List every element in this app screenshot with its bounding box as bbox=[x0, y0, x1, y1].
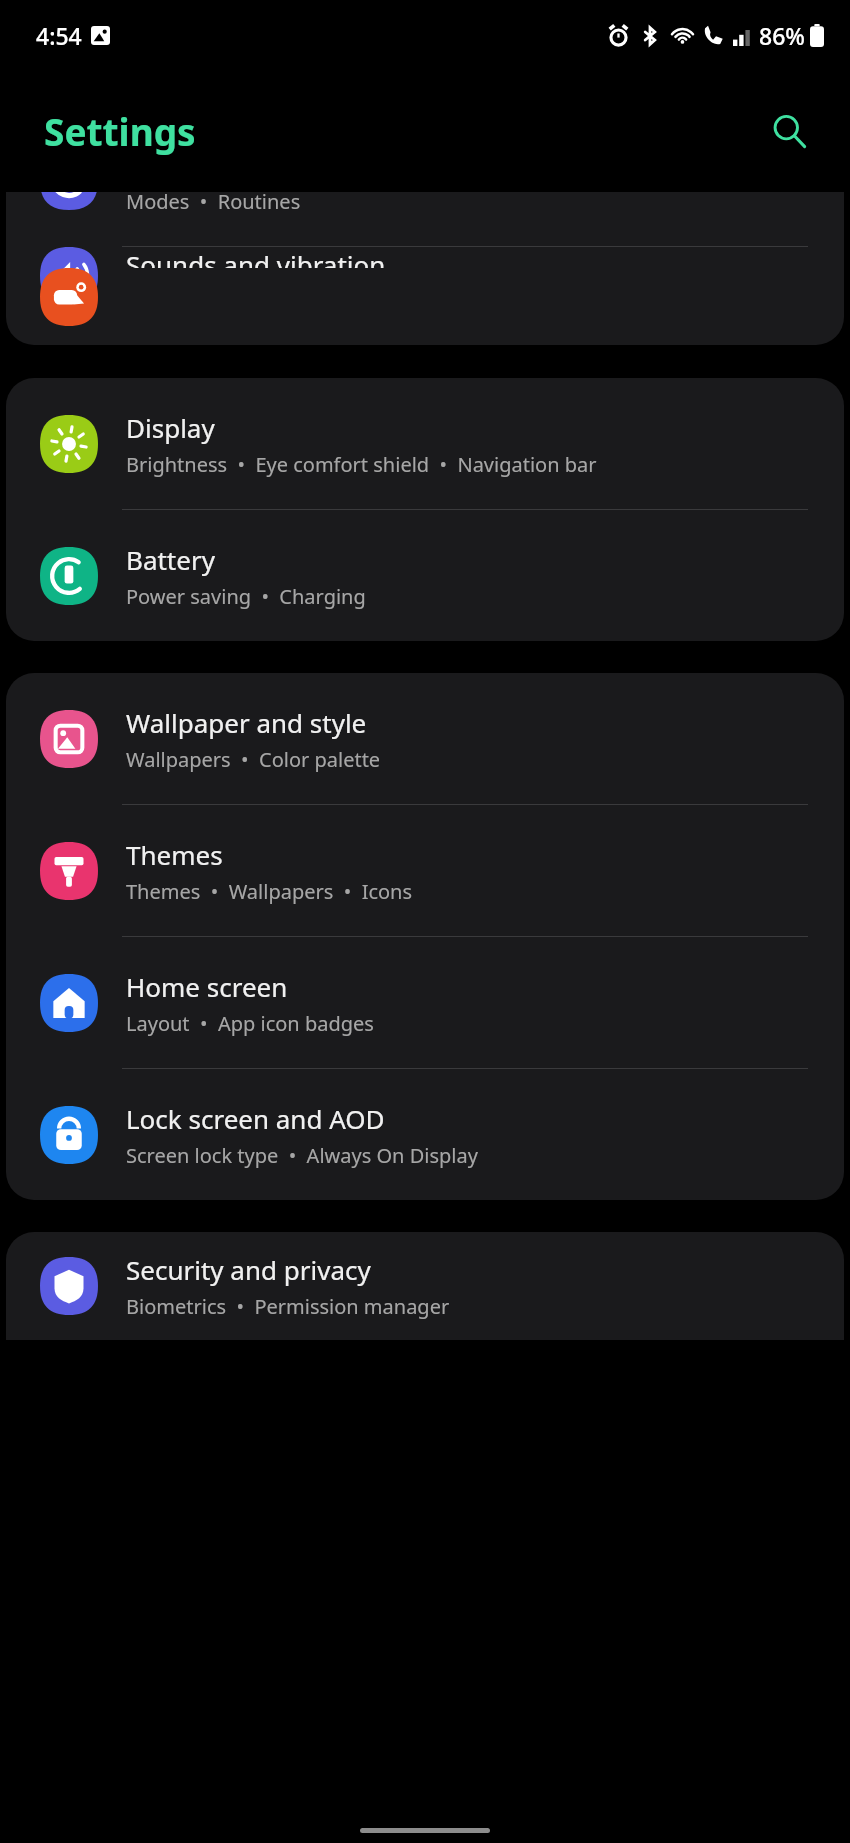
staticText: Security and privacy bbox=[126, 1252, 371, 1287]
staticText: Modes • Routines bbox=[126, 192, 301, 215]
staticText: Themes • Wallpapers • Icons bbox=[126, 878, 413, 905]
button[interactable]: Home screen bbox=[6, 937, 844, 1068]
button[interactable]: Themes bbox=[6, 805, 844, 936]
button[interactable]: Lock screen and AOD bbox=[6, 1069, 844, 1200]
staticText: Biometrics • Permission manager bbox=[126, 1293, 450, 1320]
button[interactable]: Sounds and vibration bbox=[6, 247, 844, 268]
staticText: Battery bbox=[126, 542, 215, 577]
staticText: Lock screen and AOD bbox=[126, 1101, 385, 1136]
button[interactable]: Security and privacy bbox=[6, 1232, 844, 1340]
staticText: 4:54 bbox=[36, 20, 82, 51]
button[interactable]: Wallpaper and style bbox=[6, 673, 844, 804]
staticText: Display bbox=[126, 410, 215, 445]
staticText: Home screen bbox=[126, 969, 288, 1004]
button[interactable]: Search bbox=[758, 100, 820, 162]
staticText: Themes bbox=[126, 837, 223, 872]
button[interactable]: Display bbox=[6, 378, 844, 509]
staticText: Screen lock type • Always On Display bbox=[126, 1142, 478, 1169]
staticText: Sounds and vibration bbox=[126, 247, 386, 268]
staticText: Wallpaper and style bbox=[126, 705, 367, 740]
staticText: Power saving • Charging bbox=[126, 583, 366, 610]
button[interactable]: Battery bbox=[6, 510, 844, 641]
staticText: 86% bbox=[759, 20, 805, 51]
staticText: Wallpapers • Color palette bbox=[126, 746, 381, 773]
staticText: Settings bbox=[44, 106, 196, 156]
staticText: Brightness • Eye comfort shield • Naviga… bbox=[126, 451, 597, 478]
button[interactable]: Modes and Routines bbox=[6, 192, 844, 246]
staticText: Layout • App icon badges bbox=[126, 1010, 374, 1037]
